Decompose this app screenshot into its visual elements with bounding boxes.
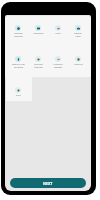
button[interactable]: General Settings	[8, 16, 28, 47]
staticText: Battery Hub Intuition	[12, 63, 25, 69]
button[interactable]: Print	[48, 16, 68, 47]
staticText: Sync	[16, 94, 21, 97]
button[interactable]: Monthly Settings	[28, 47, 48, 78]
button[interactable]: NEXT	[10, 178, 86, 188]
staticText: Network Speaker	[53, 63, 63, 69]
staticText: Print	[55, 32, 61, 35]
button[interactable]: Keyboard	[28, 16, 48, 47]
button[interactable]: Default Apps	[68, 16, 88, 47]
button[interactable]: Network Speaker	[48, 47, 68, 78]
staticText: General Settings	[14, 32, 23, 38]
staticText: NEXT	[43, 181, 53, 186]
button[interactable]: Sync	[8, 78, 28, 102]
staticText: Keyboard	[33, 32, 44, 35]
button[interactable]: Security	[68, 47, 88, 78]
button[interactable]: Battery Hub Intuition	[8, 47, 28, 78]
staticText: Security	[74, 63, 83, 66]
staticText: Default Apps	[74, 32, 82, 38]
staticText: Monthly Settings	[34, 63, 43, 69]
